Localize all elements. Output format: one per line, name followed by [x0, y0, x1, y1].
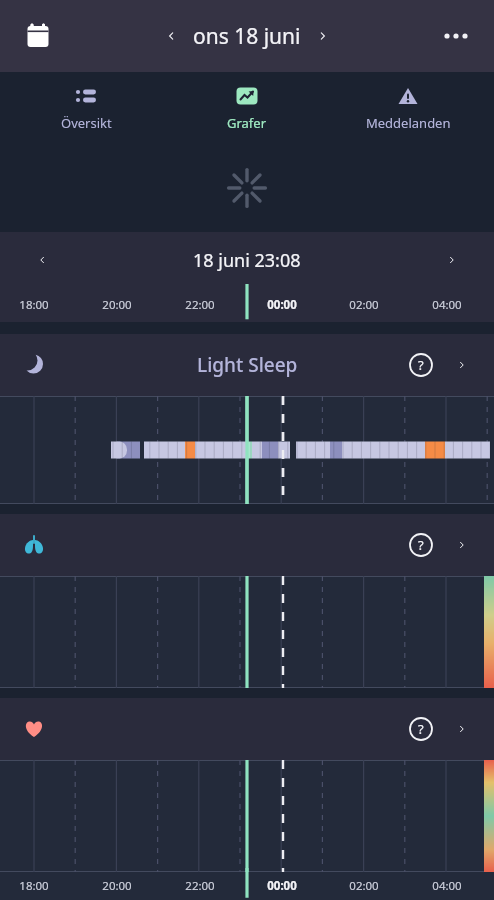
staticText: 02:00	[338, 878, 390, 894]
button[interactable]: Översikt	[11, 84, 161, 132]
staticText: ?	[418, 720, 424, 738]
button[interactable]: More options	[432, 12, 480, 60]
staticText: 22:00	[174, 878, 226, 894]
button[interactable]: Next day	[305, 18, 341, 54]
button[interactable]: Open details	[442, 345, 482, 385]
staticText: Light Sleep	[197, 352, 298, 378]
button[interactable]: Open details	[442, 525, 482, 565]
staticText: 02:00	[338, 297, 390, 313]
staticText: 18:00	[8, 297, 60, 313]
staticText: 04:00	[421, 297, 473, 313]
button[interactable]: Help	[400, 708, 442, 750]
staticText: 18 juni 23:08	[193, 248, 301, 273]
button[interactable]: Help	[400, 524, 442, 566]
staticText: 04:00	[421, 878, 473, 894]
staticText: 20:00	[91, 297, 143, 313]
button[interactable]: Previous day	[153, 18, 189, 54]
button[interactable]: Previous	[22, 240, 62, 280]
staticText: 00:00	[256, 297, 308, 313]
staticText: 18:00	[8, 878, 60, 894]
staticText: ?	[418, 356, 424, 374]
button[interactable]: Calendar	[14, 12, 62, 60]
button[interactable]: Open details	[442, 709, 482, 749]
staticText: Meddelanden	[366, 114, 451, 132]
button[interactable]: Next	[432, 240, 472, 280]
staticText: Grafer	[227, 114, 267, 132]
button[interactable]: Grafer	[172, 84, 322, 132]
staticText: 20:00	[91, 878, 143, 894]
staticText: ons 18 juni	[193, 22, 301, 51]
staticText: 00:00	[256, 878, 308, 894]
button[interactable]: Help	[400, 344, 442, 386]
staticText: Översikt	[61, 114, 112, 132]
button[interactable]: Meddelanden	[333, 84, 483, 132]
staticText: ?	[418, 536, 424, 554]
staticText: 22:00	[174, 297, 226, 313]
